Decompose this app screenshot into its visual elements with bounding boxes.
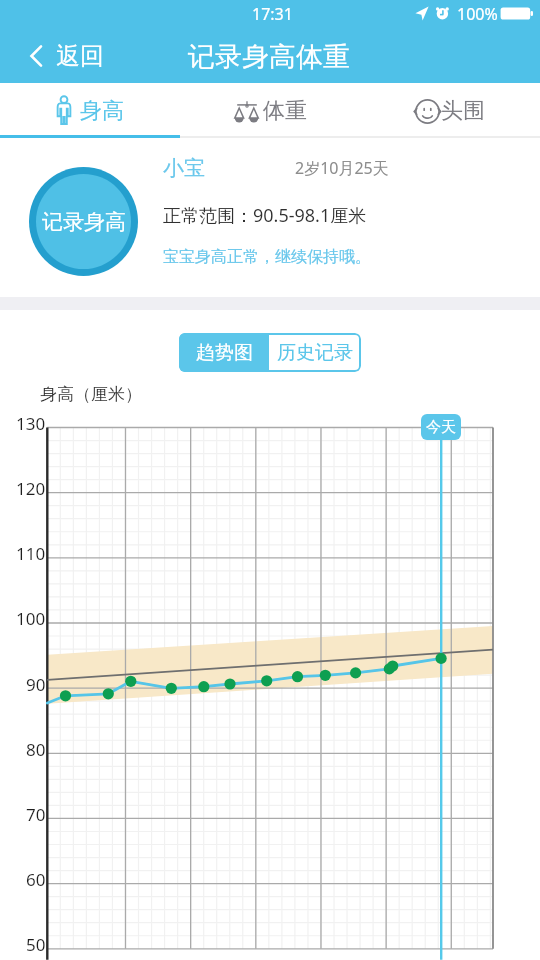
button[interactable]: 历史记录 xyxy=(269,333,361,372)
staticText: 记录身高 xyxy=(42,209,126,235)
button[interactable]: 记录身高 xyxy=(29,167,138,276)
staticText: 17:31 xyxy=(252,3,293,25)
staticText: 130 xyxy=(16,412,46,435)
staticText: 120 xyxy=(16,477,46,500)
staticText: 2岁10月25天 xyxy=(295,157,389,179)
staticText: 90 xyxy=(26,673,46,696)
staticText: 记录身高体重 xyxy=(188,40,350,74)
staticText: 100% xyxy=(457,3,498,25)
button[interactable]: 身高 xyxy=(0,83,180,138)
staticText: 80 xyxy=(26,738,46,761)
staticText: 小宝 xyxy=(163,155,205,181)
staticText: 头围 xyxy=(441,97,485,125)
staticText: 100 xyxy=(16,607,46,630)
button[interactable]: 返回 xyxy=(0,32,124,80)
staticText: 身高 xyxy=(80,97,124,125)
button[interactable]: 体重 xyxy=(180,83,360,138)
staticText: 70 xyxy=(26,803,46,826)
staticText: 110 xyxy=(16,542,46,565)
staticText: 今天 xyxy=(426,418,456,437)
staticText: 返回 xyxy=(56,41,104,71)
staticText: 宝宝身高正常，继续保持哦。 xyxy=(163,247,371,267)
staticText: 历史记录 xyxy=(277,341,353,365)
staticText: 趋势图 xyxy=(196,341,253,365)
staticText: 身高（厘米） xyxy=(40,384,142,405)
staticText: 60 xyxy=(26,868,46,891)
button[interactable]: 头围 xyxy=(360,83,540,138)
staticText: 50 xyxy=(26,933,46,956)
button[interactable]: Today xyxy=(421,414,461,440)
button[interactable]: 趋势图 xyxy=(179,333,269,372)
staticText: 体重 xyxy=(263,97,307,125)
staticText: 正常范围：90.5-98.1厘米 xyxy=(163,203,367,228)
